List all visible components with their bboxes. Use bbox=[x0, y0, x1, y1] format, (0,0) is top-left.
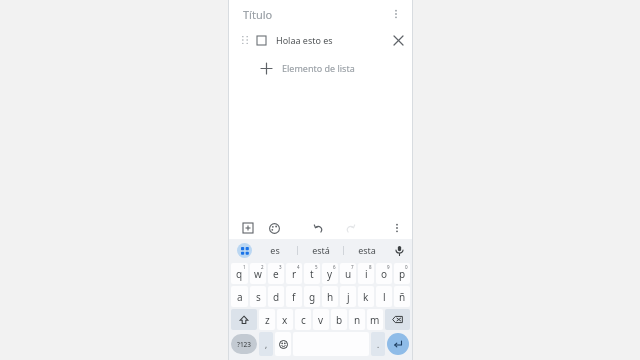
button[interactable]: ñ bbox=[394, 286, 410, 307]
button[interactable]: Elemento de lista bbox=[229, 57, 412, 79]
button[interactable]: a bbox=[231, 286, 248, 307]
staticText: v bbox=[318, 313, 324, 327]
button[interactable]: Delete item bbox=[387, 29, 409, 51]
button[interactable]: u bbox=[340, 263, 356, 284]
staticText: , bbox=[265, 339, 268, 350]
staticText: d bbox=[273, 290, 280, 304]
staticText: 4 bbox=[297, 264, 300, 270]
button[interactable]: w bbox=[250, 263, 266, 284]
staticText: x bbox=[282, 313, 288, 327]
staticText: m bbox=[370, 313, 380, 327]
button[interactable]: Checkbox bbox=[229, 28, 412, 52]
button[interactable]: Period bbox=[371, 332, 385, 356]
staticText: t bbox=[310, 267, 314, 281]
button[interactable]: Backspace bbox=[385, 309, 410, 330]
button[interactable]: y bbox=[322, 263, 338, 284]
staticText: k bbox=[363, 290, 369, 304]
button[interactable]: c bbox=[295, 309, 311, 330]
button[interactable]: Add bbox=[239, 219, 257, 237]
button[interactable]: esta bbox=[344, 239, 389, 261]
staticText: está bbox=[312, 244, 330, 256]
button[interactable]: x bbox=[277, 309, 293, 330]
button[interactable]: v bbox=[313, 309, 329, 330]
button[interactable]: h bbox=[322, 286, 338, 307]
staticText: y bbox=[327, 267, 333, 281]
button[interactable]: q bbox=[231, 263, 248, 284]
staticText: 5 bbox=[315, 264, 318, 270]
button[interactable]: n bbox=[349, 309, 365, 330]
button[interactable]: Comma bbox=[259, 332, 273, 356]
button[interactable]: Enter bbox=[387, 333, 409, 355]
staticText: p bbox=[399, 267, 406, 281]
staticText: . bbox=[377, 339, 380, 350]
staticText: h bbox=[327, 290, 334, 304]
staticText: b bbox=[336, 313, 343, 327]
button[interactable]: Emoji bbox=[275, 332, 291, 356]
staticText: 9 bbox=[387, 264, 390, 270]
staticText: s bbox=[256, 290, 261, 304]
button[interactable]: z bbox=[259, 309, 275, 330]
staticText: ?123 bbox=[237, 340, 252, 349]
button[interactable]: More options bbox=[384, 2, 408, 26]
staticText: j bbox=[347, 290, 350, 304]
button[interactable]: o bbox=[376, 263, 392, 284]
button[interactable]: k bbox=[358, 286, 374, 307]
staticText: o bbox=[381, 267, 388, 281]
button[interactable]: r bbox=[286, 263, 302, 284]
staticText: 0 bbox=[405, 264, 408, 270]
button[interactable]: Keyboard options bbox=[237, 243, 252, 258]
staticText: f bbox=[292, 290, 296, 304]
staticText: z bbox=[265, 313, 270, 327]
staticText: r bbox=[292, 267, 297, 281]
staticText: i bbox=[365, 267, 368, 281]
button[interactable]: b bbox=[331, 309, 347, 330]
button[interactable]: Voice input bbox=[389, 240, 409, 260]
staticText: 2 bbox=[261, 264, 264, 270]
button[interactable]: i bbox=[358, 263, 374, 284]
button[interactable]: p bbox=[394, 263, 410, 284]
button[interactable]: f bbox=[286, 286, 302, 307]
button[interactable]: s bbox=[250, 286, 266, 307]
button[interactable]: Shift bbox=[231, 309, 257, 330]
staticText: n bbox=[354, 313, 361, 327]
staticText: a bbox=[237, 290, 243, 304]
staticText: ñ bbox=[399, 290, 406, 304]
button[interactable]: More bbox=[387, 218, 407, 238]
staticText: 8 bbox=[369, 264, 372, 270]
button[interactable]: m bbox=[367, 309, 383, 330]
staticText: e bbox=[273, 267, 279, 281]
staticText: es bbox=[270, 244, 280, 256]
staticText: w bbox=[254, 267, 262, 281]
button[interactable]: está bbox=[298, 239, 343, 261]
button[interactable]: es bbox=[252, 239, 297, 261]
button[interactable]: ?123 bbox=[231, 334, 257, 354]
button[interactable]: Undo bbox=[309, 219, 327, 237]
button[interactable]: Redo bbox=[341, 219, 359, 237]
button[interactable]: e bbox=[268, 263, 284, 284]
staticText: 6 bbox=[333, 264, 336, 270]
staticText: esta bbox=[358, 244, 376, 256]
staticText: 7 bbox=[351, 264, 354, 270]
staticText: Holaa esto es bbox=[276, 34, 387, 46]
button[interactable]: l bbox=[376, 286, 392, 307]
button[interactable]: Checkbox bbox=[257, 36, 266, 45]
staticText: c bbox=[301, 313, 306, 327]
button[interactable]: d bbox=[268, 286, 284, 307]
button[interactable]: t bbox=[304, 263, 320, 284]
staticText: l bbox=[383, 290, 386, 304]
button[interactable]: Color palette bbox=[265, 219, 283, 237]
staticText: Elemento de lista bbox=[282, 62, 355, 74]
staticText: u bbox=[345, 267, 352, 281]
button[interactable]: j bbox=[340, 286, 356, 307]
staticText: 3 bbox=[279, 264, 282, 270]
button[interactable]: g bbox=[304, 286, 320, 307]
staticText: q bbox=[236, 267, 243, 281]
staticText: g bbox=[309, 290, 316, 304]
staticText: 1 bbox=[243, 264, 246, 270]
staticText: Título bbox=[243, 7, 384, 22]
